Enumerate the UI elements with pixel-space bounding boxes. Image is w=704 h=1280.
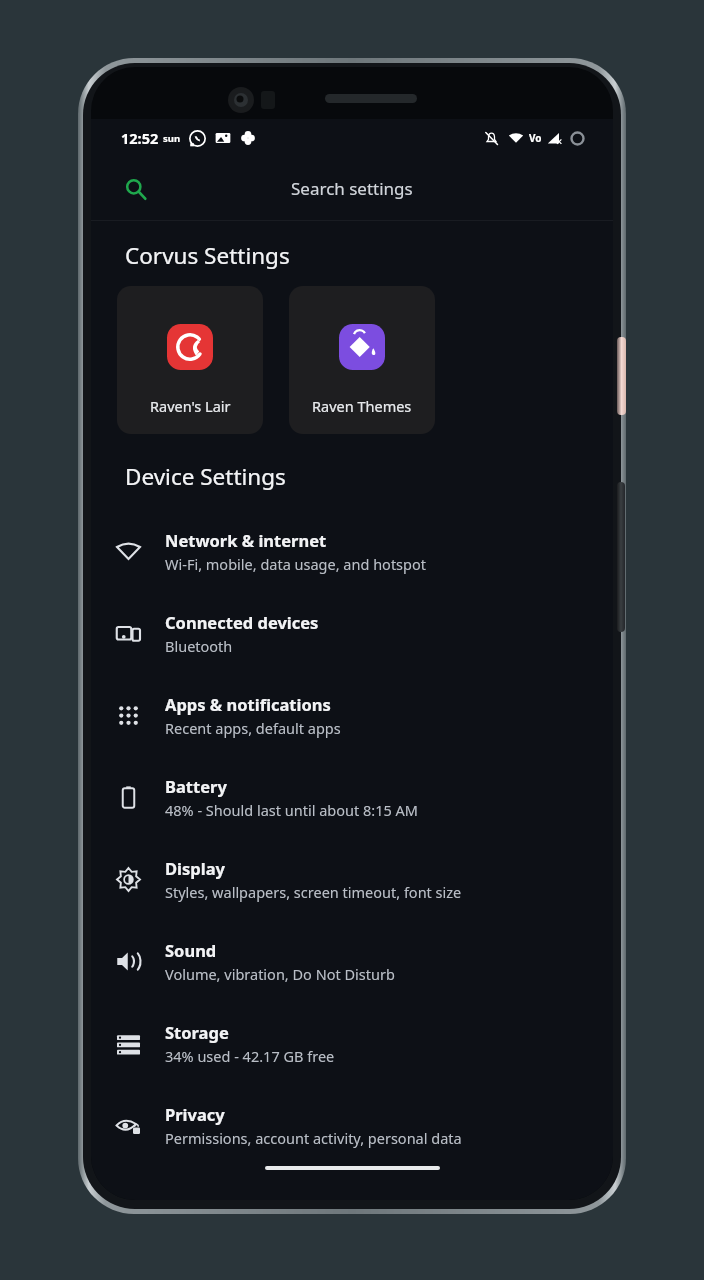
- other: Search: [125, 178, 147, 200]
- staticText: Privacy: [165, 1103, 225, 1125]
- staticText: Device Settings: [125, 461, 286, 492]
- staticText: Connected devices: [165, 611, 319, 633]
- other: Power: [617, 337, 626, 415]
- button[interactable]: Network & internet: [91, 510, 613, 592]
- staticText: Search settings: [291, 177, 413, 200]
- button[interactable]: Display: [91, 838, 613, 920]
- button[interactable]: Privacy: [91, 1084, 613, 1166]
- staticText: Storage: [165, 1021, 229, 1043]
- staticText: Sound: [165, 939, 217, 961]
- staticText: Battery: [165, 775, 227, 797]
- staticText: Permissions, account activity, personal …: [165, 1128, 462, 1148]
- staticText: sun: [163, 132, 181, 145]
- staticText: Recent apps, default apps: [165, 718, 341, 738]
- staticText: Vo: [529, 131, 542, 145]
- staticText: Bluetooth: [165, 636, 233, 656]
- button[interactable]: Sound: [91, 920, 613, 1002]
- staticText: Volume, vibration, Do Not Disturb: [165, 964, 395, 984]
- button[interactable]: Raven Themes: [289, 286, 435, 434]
- staticText: Corvus Settings: [125, 240, 290, 271]
- other: Volume: [617, 482, 625, 632]
- button[interactable]: Search: [91, 157, 613, 220]
- button[interactable]: Battery: [91, 756, 613, 838]
- staticText: 12:52: [121, 128, 159, 148]
- staticText: Raven Themes: [312, 396, 412, 416]
- button[interactable]: Raven's Lair: [117, 286, 263, 434]
- staticText: Display: [165, 857, 225, 879]
- staticText: Wi-Fi, mobile, data usage, and hotspot: [165, 554, 426, 574]
- staticText: Apps & notifications: [165, 693, 331, 715]
- staticText: Raven's Lair: [150, 396, 231, 416]
- button[interactable]: Connected devices: [91, 592, 613, 674]
- staticText: 48% - Should last until about 8:15 AM: [165, 800, 418, 820]
- button[interactable]: Storage: [91, 1002, 613, 1084]
- staticText: 34% used - 42.17 GB free: [165, 1046, 335, 1066]
- button[interactable]: Apps & notifications: [91, 674, 613, 756]
- staticText: Styles, wallpapers, screen timeout, font…: [165, 882, 462, 902]
- staticText: Network & internet: [165, 529, 327, 551]
